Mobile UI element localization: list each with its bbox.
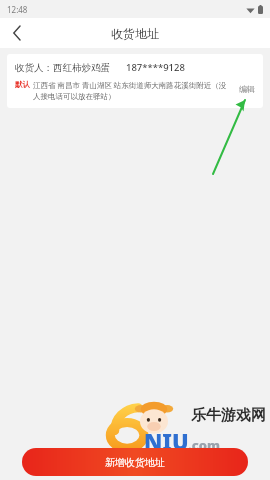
staticText: 江西省 南昌市 青山湖区 站东街道师大南路花溪街附近（没人接电话可以放在驿站）	[33, 80, 231, 101]
button[interactable]: 编辑	[235, 82, 259, 96]
staticText: 默认	[15, 80, 30, 89]
staticText: 乐牛游戏网	[191, 406, 266, 425]
staticText: 新增收货地址	[105, 456, 165, 469]
button[interactable]: 新增收货地址	[22, 448, 248, 476]
button[interactable]: 收货人：西红柿炒鸡蛋	[7, 54, 263, 108]
button[interactable]: Back	[0, 18, 34, 48]
staticText: 编辑	[239, 84, 255, 94]
staticText: .com	[188, 436, 221, 454]
staticText: 187****9128	[126, 61, 185, 74]
staticText: NIU	[144, 426, 189, 456]
staticText: 收货人：西红柿炒鸡蛋	[15, 62, 110, 74]
staticText: 收货地址	[111, 26, 159, 41]
staticText: 12:48	[7, 4, 28, 15]
